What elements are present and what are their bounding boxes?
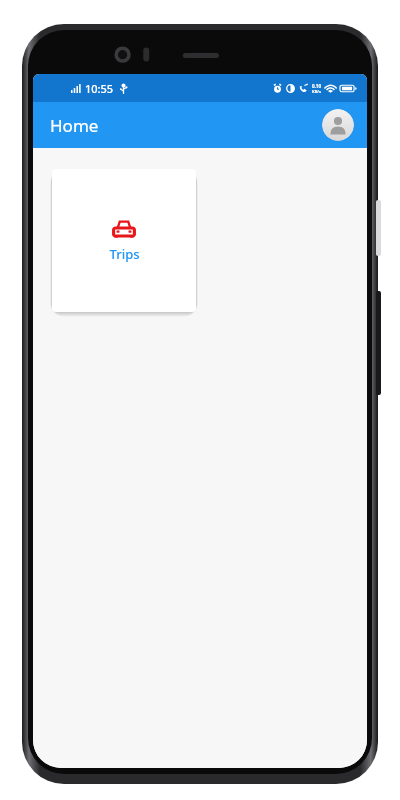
staticText: KB/s [312, 89, 321, 94]
staticText: 0.10 [312, 83, 321, 89]
staticText: Trips [109, 245, 140, 263]
button[interactable]: Profile [322, 109, 354, 141]
staticText: Home [50, 114, 99, 137]
button[interactable]: Trips [52, 169, 196, 312]
staticText: 10:55 [85, 81, 114, 96]
